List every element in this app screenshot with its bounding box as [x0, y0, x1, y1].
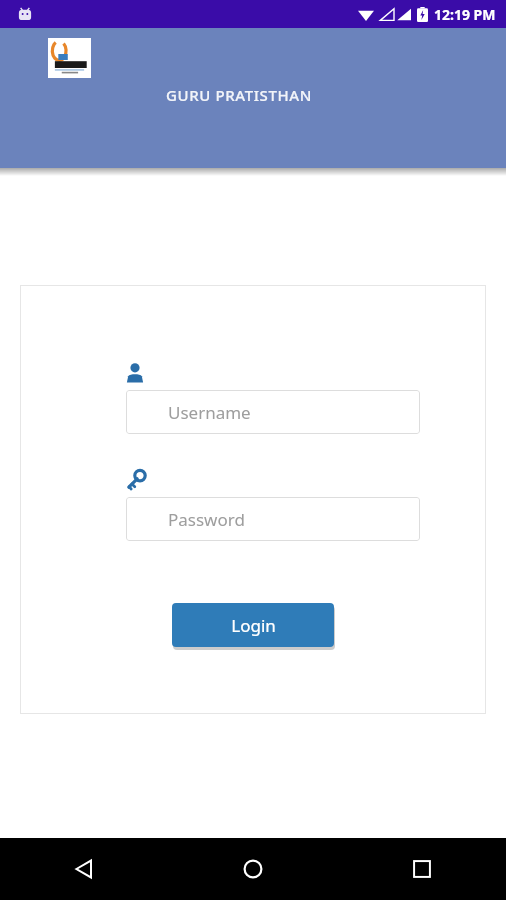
other: Password — [126, 470, 146, 490]
button[interactable]: Username field — [126, 390, 420, 434]
button[interactable]: Recent apps — [337, 838, 506, 900]
button[interactable]: Home — [168, 838, 337, 900]
staticText: GURU PRATISTHAN — [166, 85, 312, 105]
staticText: 12:19 PM — [434, 5, 496, 24]
button[interactable]: Back — [0, 838, 168, 900]
button[interactable]: Login — [172, 603, 334, 647]
staticText: Login — [231, 614, 276, 637]
staticText: Password — [168, 508, 245, 531]
other: User — [126, 363, 144, 383]
button[interactable]: Password field — [126, 497, 420, 541]
staticText: Username — [168, 401, 251, 424]
